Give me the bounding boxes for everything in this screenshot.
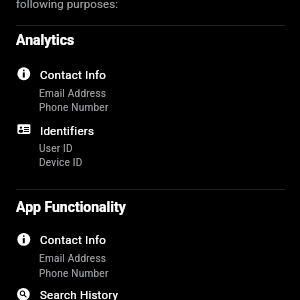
button[interactable]: Information <box>0 62 300 115</box>
button[interactable]: Information <box>0 228 300 281</box>
staticText: following purposes: <box>16 0 119 10</box>
staticText: Phone Number <box>39 102 109 114</box>
button[interactable]: Search history <box>0 283 300 300</box>
other: Search history <box>0 283 40 300</box>
staticText: Identifiers <box>40 124 95 137</box>
other: Information <box>0 228 40 246</box>
button[interactable]: Identifiers <box>0 118 300 171</box>
staticText: Phone Number <box>39 268 109 280</box>
staticText: Device ID <box>39 157 83 169</box>
staticText: Contact Info <box>40 68 107 81</box>
other: Information <box>0 62 40 80</box>
staticText: App Functionality <box>16 199 126 215</box>
staticText: Email Address <box>39 88 107 100</box>
staticText: User ID <box>39 143 73 155</box>
staticText: Analytics <box>16 32 75 48</box>
other: Identifiers <box>0 118 40 136</box>
staticText: Search History <box>40 288 119 300</box>
staticText: Email Address <box>39 253 107 265</box>
staticText: Contact Info <box>40 233 107 246</box>
